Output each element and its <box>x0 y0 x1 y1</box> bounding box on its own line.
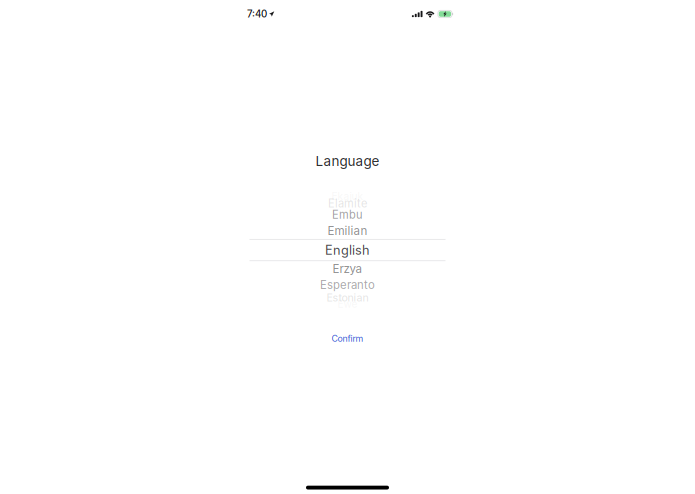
staticText: Language <box>315 153 379 169</box>
staticText: Ewe <box>337 298 357 310</box>
button[interactable]: English <box>249 244 445 256</box>
staticText: Emilian <box>327 224 367 238</box>
staticText: Esperanto <box>320 278 375 292</box>
staticText: 7:40 <box>247 8 267 20</box>
staticText: Erzya <box>332 262 362 276</box>
button[interactable]: Elamite <box>249 197 445 209</box>
button[interactable]: Esperanto <box>249 279 445 291</box>
button[interactable]: Emilian <box>249 225 445 237</box>
staticText: Elamite <box>328 197 367 210</box>
button[interactable]: Ewe <box>249 298 445 310</box>
staticText: Confirm <box>331 333 363 344</box>
button[interactable]: Embu <box>249 209 445 221</box>
button[interactable]: Estonian <box>249 292 445 304</box>
staticText: Estonian <box>326 291 368 304</box>
staticText: Ekajuk <box>331 190 363 203</box>
staticText: Embu <box>332 208 363 221</box>
staticText: English <box>325 242 370 258</box>
button[interactable]: Confirm <box>310 331 384 346</box>
button[interactable]: Erzya <box>249 263 445 275</box>
